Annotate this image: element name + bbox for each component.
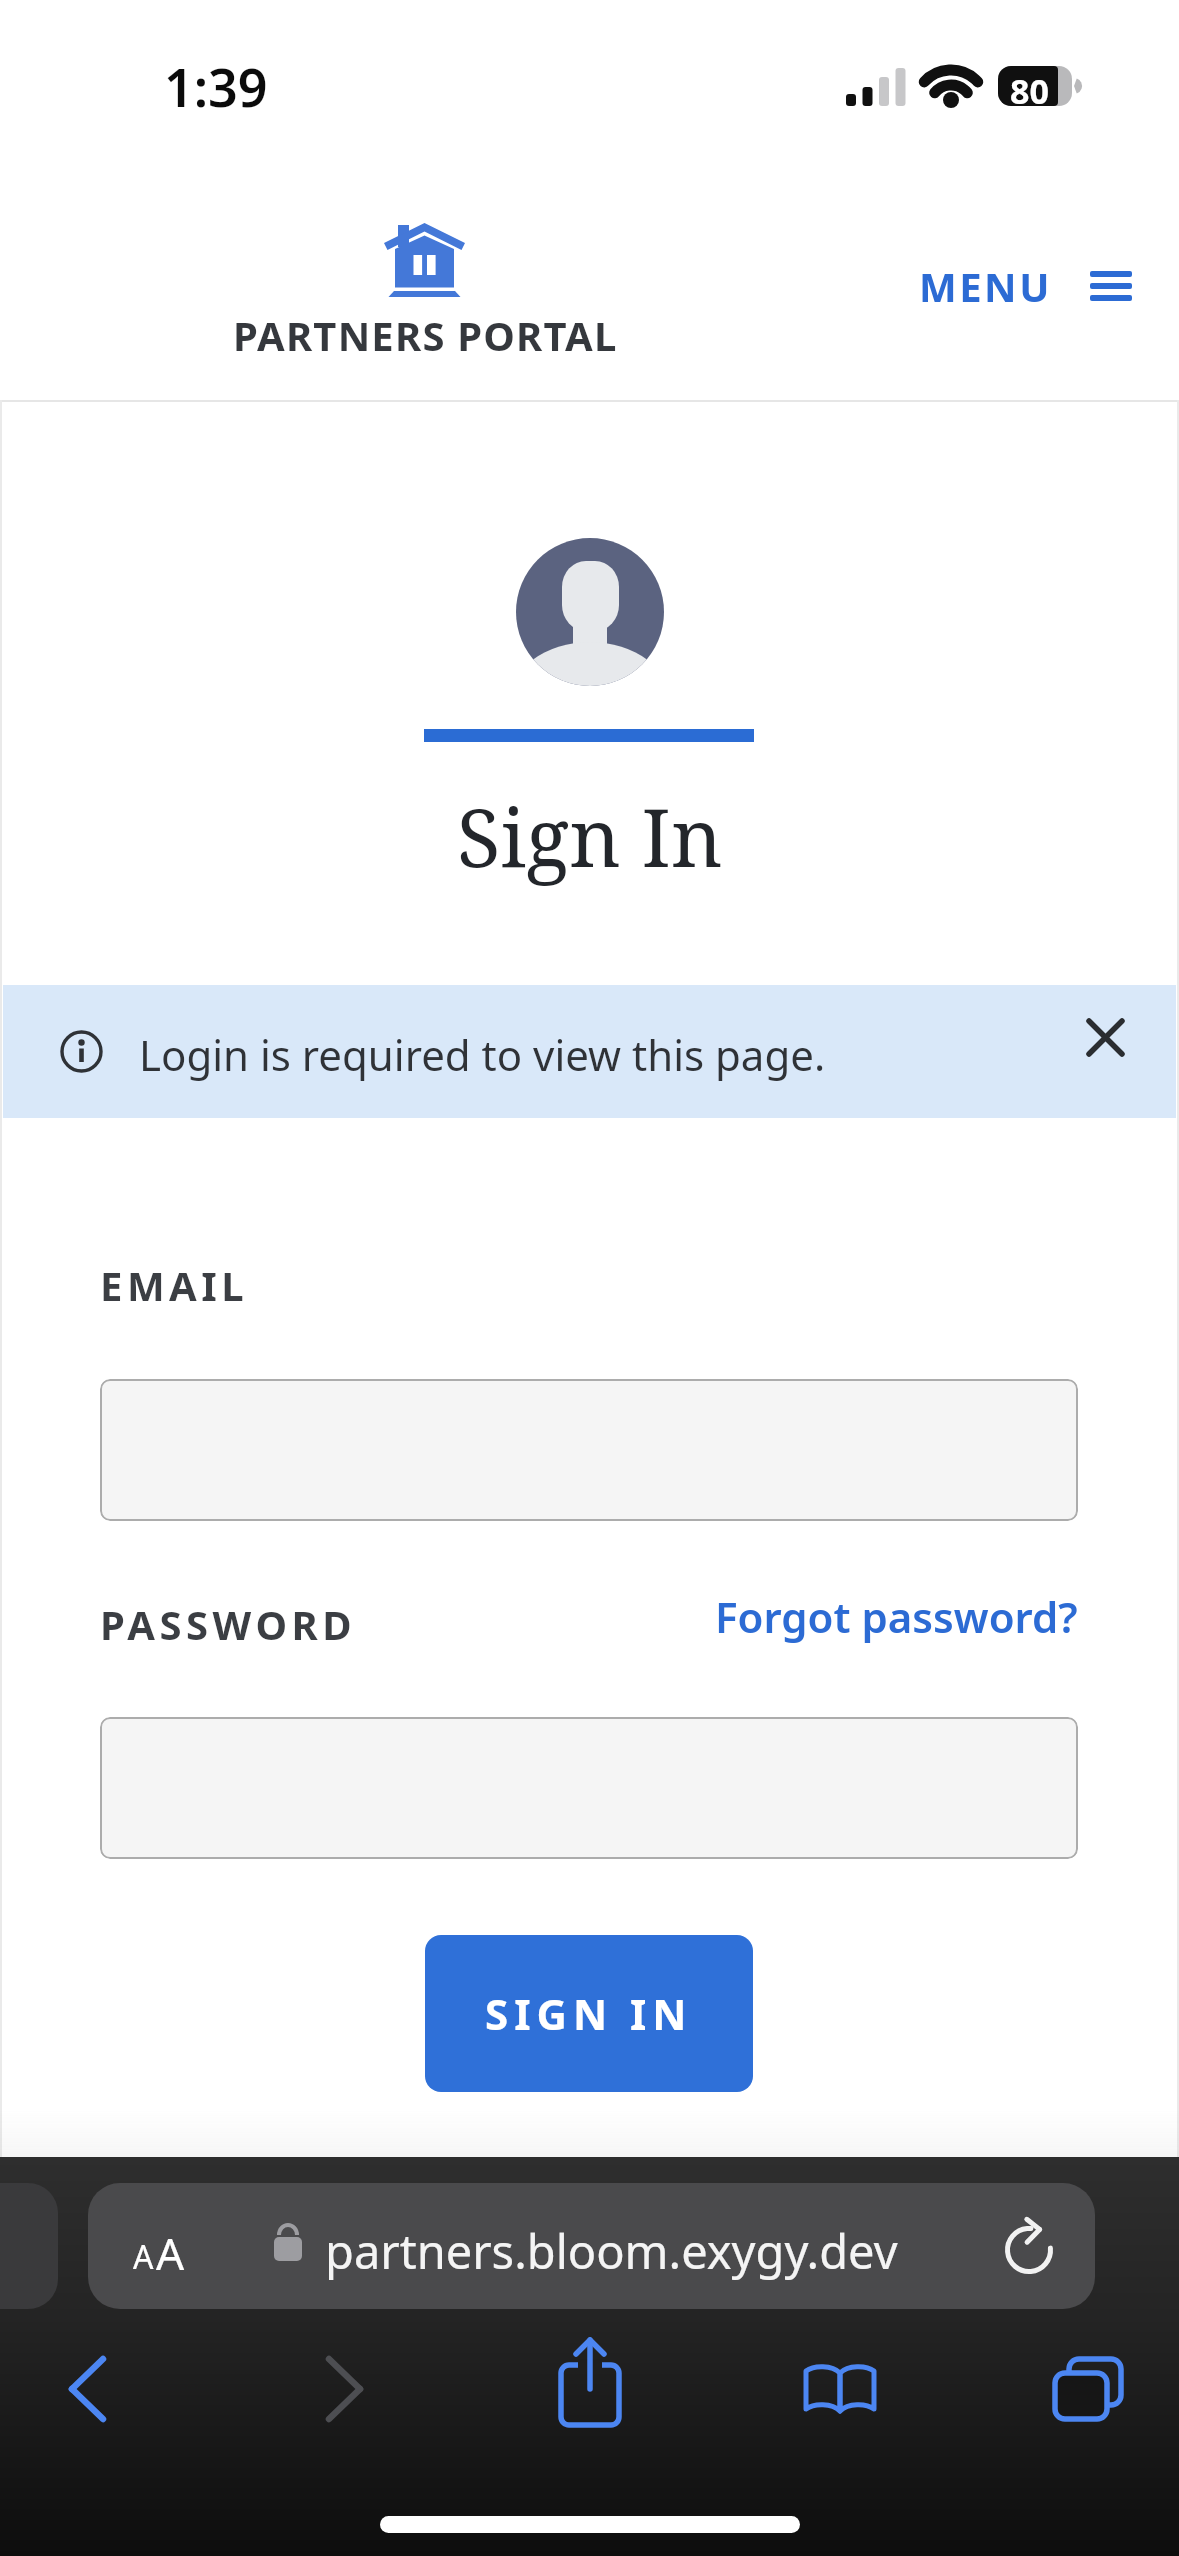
button[interactable] [558,2337,622,2429]
button[interactable]: Forgot password? [715,1588,1078,1645]
button[interactable] [1086,1018,1128,1060]
staticText: A [133,2235,154,2279]
staticText: partners.bloom.exygy.dev [325,2219,898,2283]
button[interactable] [802,2365,878,2417]
staticText: PASSWORD [100,1597,357,1651]
button[interactable]: A [88,2183,1095,2309]
button[interactable]: SIGN IN [425,1935,753,2092]
button[interactable] [1053,2357,1123,2421]
staticText: 80 [1010,68,1049,114]
staticText: Sign In [457,781,723,890]
staticText: Login is required to view this page. [139,1026,826,1083]
button[interactable] [100,1717,1078,1859]
button[interactable]: MENU [919,259,1132,313]
staticText: 1:39 [164,51,268,122]
staticText: MENU [919,259,1052,313]
button[interactable] [100,1379,1078,1521]
staticText: EMAIL [100,1258,249,1312]
button[interactable] [1005,2212,1055,2274]
staticText: A [156,2223,185,2283]
button[interactable] [322,2355,366,2425]
staticText: SIGN IN [485,1985,693,2042]
staticText: PARTNERS PORTAL [233,308,618,362]
button[interactable] [66,2355,110,2425]
